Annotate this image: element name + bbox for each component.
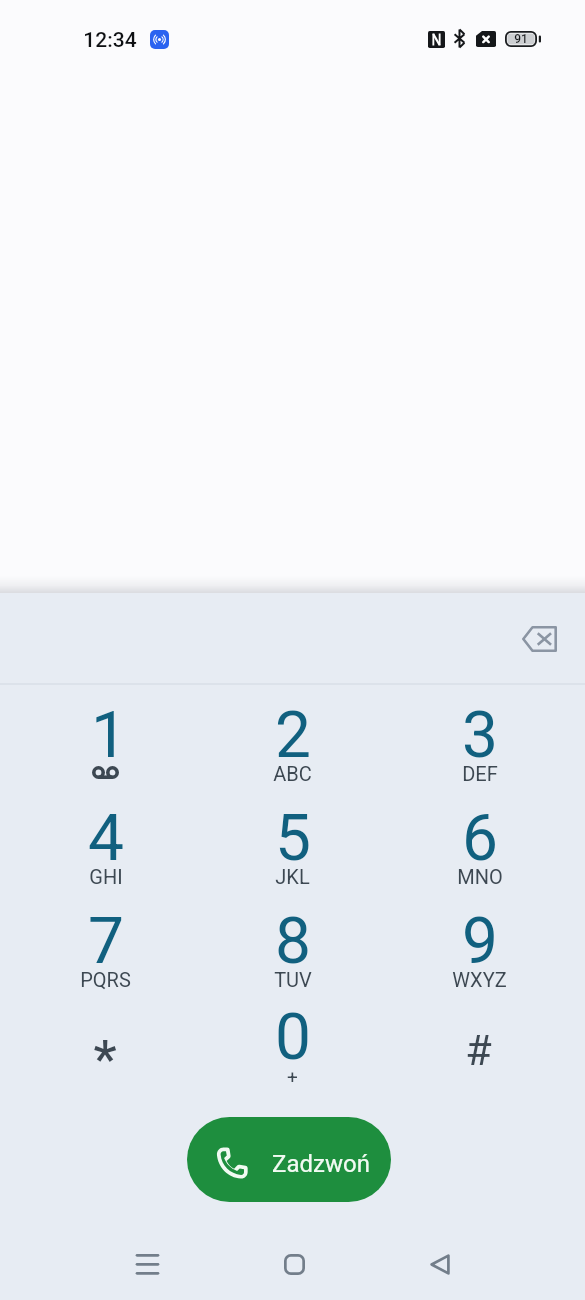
button[interactable]: 1 [12, 700, 199, 803]
button[interactable]: 3 [386, 700, 573, 803]
staticText: 12:34 [83, 28, 137, 53]
staticText: PQRS [80, 968, 131, 991]
button[interactable]: 0 [199, 1002, 386, 1105]
button[interactable]: 6 [386, 803, 573, 906]
staticText: JKL [275, 865, 310, 888]
staticText: 7 [88, 904, 124, 979]
button[interactable]: 2 [199, 700, 386, 803]
button[interactable]: Home [258, 1228, 330, 1300]
staticText: Zadzwoń [272, 1150, 370, 1178]
staticText: 2 [275, 698, 311, 773]
button[interactable]: 4 [12, 803, 199, 906]
staticText: GHI [89, 865, 123, 888]
button[interactable]: Recent apps [111, 1228, 183, 1300]
staticText: ABC [273, 762, 312, 785]
button[interactable]: 8 [199, 906, 386, 1009]
button[interactable]: Back [404, 1228, 476, 1300]
staticText: 3 [462, 698, 498, 773]
button[interactable]: * [12, 1002, 199, 1105]
staticText: WXYZ [452, 968, 507, 991]
staticText: 6 [462, 801, 498, 876]
staticText: # [465, 1025, 492, 1075]
button[interactable]: 7 [12, 906, 199, 1009]
staticText: + [287, 1066, 298, 1088]
staticText: MNO [457, 865, 503, 888]
staticText: 0 [275, 1000, 311, 1075]
staticText: DEF [462, 762, 498, 785]
staticText: 8 [275, 904, 311, 979]
staticText: 4 [88, 801, 124, 876]
button[interactable]: Backspace [503, 602, 576, 675]
staticText: * [93, 1029, 117, 1090]
button[interactable]: 9 [386, 906, 573, 1009]
button[interactable]: Zadzwoń [187, 1117, 391, 1202]
button[interactable]: 5 [199, 803, 386, 906]
staticText: TUV [274, 968, 312, 991]
staticText: 5 [275, 801, 311, 876]
staticText: 9 [462, 904, 498, 979]
staticText: 1 [91, 698, 127, 773]
staticText: 91 [514, 32, 528, 46]
button[interactable]: # [386, 1002, 573, 1105]
